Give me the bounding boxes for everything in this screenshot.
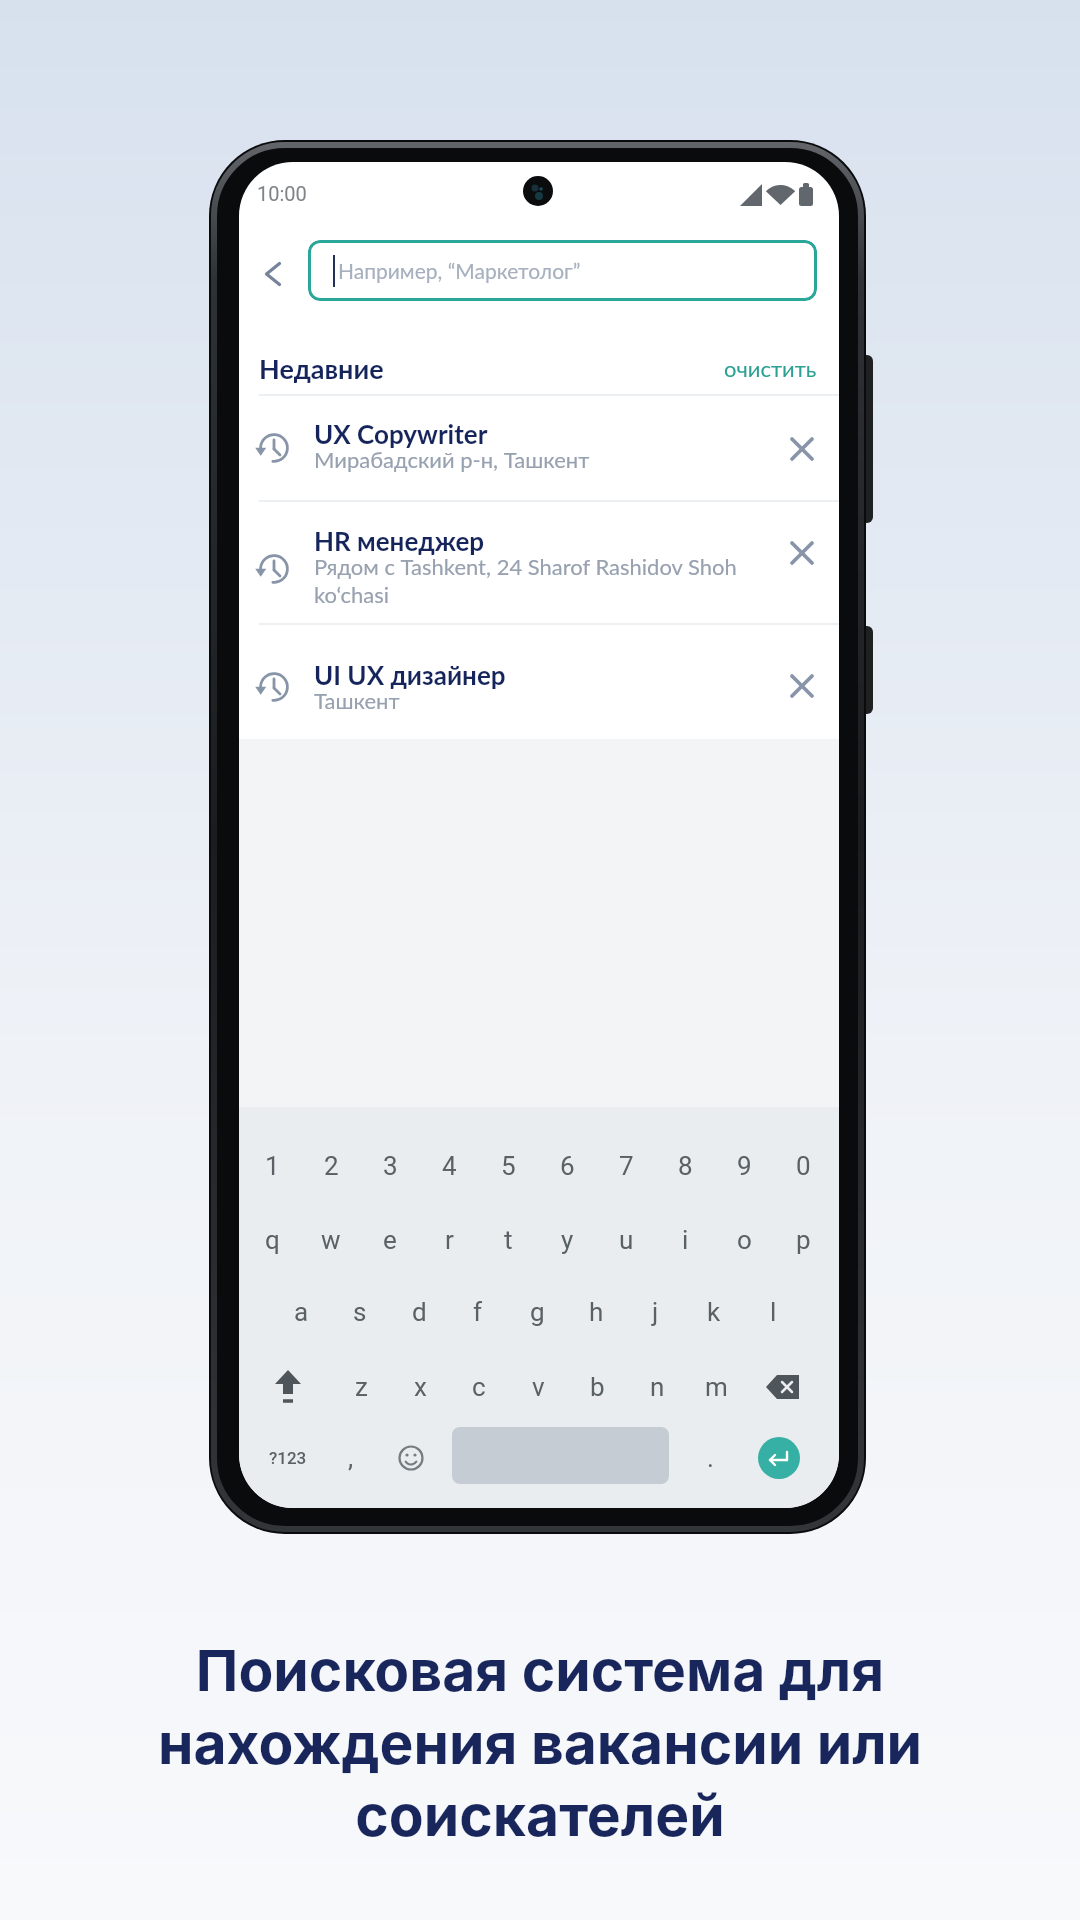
- button[interactable]: s: [334, 1288, 386, 1336]
- staticText: 3: [383, 1151, 398, 1181]
- button[interactable]: j: [629, 1288, 681, 1336]
- button[interactable]: w: [305, 1216, 357, 1264]
- button[interactable]: t: [482, 1216, 534, 1264]
- staticText: 7: [619, 1151, 634, 1181]
- button[interactable]: UX Copywriter: [239, 396, 839, 500]
- button[interactable]: p: [777, 1216, 829, 1264]
- button[interactable]: ,: [325, 1434, 377, 1482]
- button[interactable]: v: [512, 1363, 564, 1411]
- staticText: a: [294, 1297, 309, 1327]
- button[interactable]: u: [600, 1216, 652, 1264]
- staticText: Рядом с Tashkent, 24 Sharof Rashidov Sho…: [314, 553, 737, 608]
- button[interactable]: d: [393, 1288, 445, 1336]
- button[interactable]: z: [335, 1363, 387, 1411]
- staticText: f: [473, 1297, 483, 1327]
- button[interactable]: 3: [364, 1142, 416, 1190]
- staticText: k: [707, 1297, 721, 1327]
- button[interactable]: 5: [482, 1142, 534, 1190]
- button[interactable]: f: [452, 1288, 504, 1336]
- button[interactable]: ?123: [262, 1434, 314, 1482]
- staticText: Поисковая система для нахождения ваканси…: [0, 1636, 1080, 1849]
- button[interactable]: o: [718, 1216, 770, 1264]
- button[interactable]: a: [275, 1288, 327, 1336]
- button[interactable]: g: [511, 1288, 563, 1336]
- staticText: r: [445, 1225, 454, 1255]
- staticText: q: [265, 1225, 280, 1255]
- button[interactable]: [788, 672, 816, 700]
- staticText: HR менеджер: [314, 525, 485, 556]
- button[interactable]: k: [688, 1288, 740, 1336]
- staticText: 10:00: [257, 182, 307, 205]
- button[interactable]: 7: [600, 1142, 652, 1190]
- staticText: g: [530, 1297, 545, 1327]
- staticText: x: [414, 1372, 427, 1402]
- staticText: Ташкент: [314, 687, 400, 713]
- staticText: v: [532, 1372, 545, 1402]
- button[interactable]: i: [659, 1216, 711, 1264]
- button[interactable]: 4: [423, 1142, 475, 1190]
- button[interactable]: .: [684, 1434, 736, 1482]
- staticText: 1: [265, 1151, 280, 1181]
- button[interactable]: HR менеджер: [239, 502, 839, 623]
- button[interactable]: y: [541, 1216, 593, 1264]
- staticText: s: [353, 1297, 367, 1327]
- staticText: t: [504, 1225, 513, 1255]
- staticText: o: [737, 1225, 752, 1255]
- button[interactable]: 6: [541, 1142, 593, 1190]
- staticText: w: [321, 1225, 341, 1255]
- button[interactable]: b: [571, 1363, 623, 1411]
- staticText: 0: [796, 1151, 811, 1181]
- button[interactable]: UI UX дизайнер: [239, 625, 839, 739]
- staticText: UX Copywriter: [314, 418, 488, 449]
- button[interactable]: [391, 1438, 431, 1478]
- staticText: j: [652, 1297, 659, 1327]
- staticText: очистить: [724, 355, 817, 381]
- staticText: m: [705, 1372, 728, 1402]
- button[interactable]: очистить: [669, 346, 817, 390]
- button[interactable]: l: [747, 1288, 799, 1336]
- staticText: l: [770, 1297, 777, 1327]
- staticText: n: [650, 1372, 665, 1402]
- button[interactable]: h: [570, 1288, 622, 1336]
- button[interactable]: 9: [718, 1142, 770, 1190]
- staticText: 5: [501, 1151, 516, 1181]
- button[interactable]: 8: [659, 1142, 711, 1190]
- staticText: 4: [442, 1151, 457, 1181]
- button[interactable]: [758, 1437, 800, 1479]
- staticText: p: [796, 1225, 811, 1255]
- staticText: d: [412, 1297, 427, 1327]
- staticText: .: [707, 1443, 714, 1473]
- button[interactable]: e: [364, 1216, 416, 1264]
- button[interactable]: 2: [305, 1142, 357, 1190]
- staticText: 9: [737, 1151, 752, 1181]
- staticText: 8: [678, 1151, 693, 1181]
- button[interactable]: r: [423, 1216, 475, 1264]
- button[interactable]: Например, “Маркетолог”: [308, 240, 817, 301]
- staticText: y: [561, 1225, 574, 1255]
- staticText: Например, “Маркетолог”: [338, 258, 581, 283]
- button[interactable]: 1: [246, 1142, 298, 1190]
- staticText: u: [619, 1225, 634, 1255]
- button[interactable]: q: [246, 1216, 298, 1264]
- button[interactable]: m: [690, 1363, 742, 1411]
- button[interactable]: [788, 539, 816, 567]
- staticText: i: [682, 1225, 689, 1255]
- button[interactable]: [761, 1365, 805, 1409]
- staticText: ,: [348, 1443, 354, 1473]
- staticText: z: [355, 1372, 368, 1402]
- staticText: h: [589, 1297, 604, 1327]
- button[interactable]: x: [394, 1363, 446, 1411]
- button[interactable]: c: [453, 1363, 505, 1411]
- staticText: Мирабадский р-н, Ташкент: [314, 446, 590, 472]
- button[interactable]: [266, 1365, 310, 1409]
- staticText: Недавние: [259, 352, 384, 384]
- button[interactable]: 0: [777, 1142, 829, 1190]
- button[interactable]: n: [631, 1363, 683, 1411]
- staticText: 2: [324, 1151, 339, 1181]
- staticText: ?123: [269, 1448, 307, 1468]
- button[interactable]: [253, 254, 293, 294]
- staticText: e: [383, 1225, 397, 1255]
- staticText: 6: [560, 1151, 575, 1181]
- button[interactable]: [788, 435, 816, 463]
